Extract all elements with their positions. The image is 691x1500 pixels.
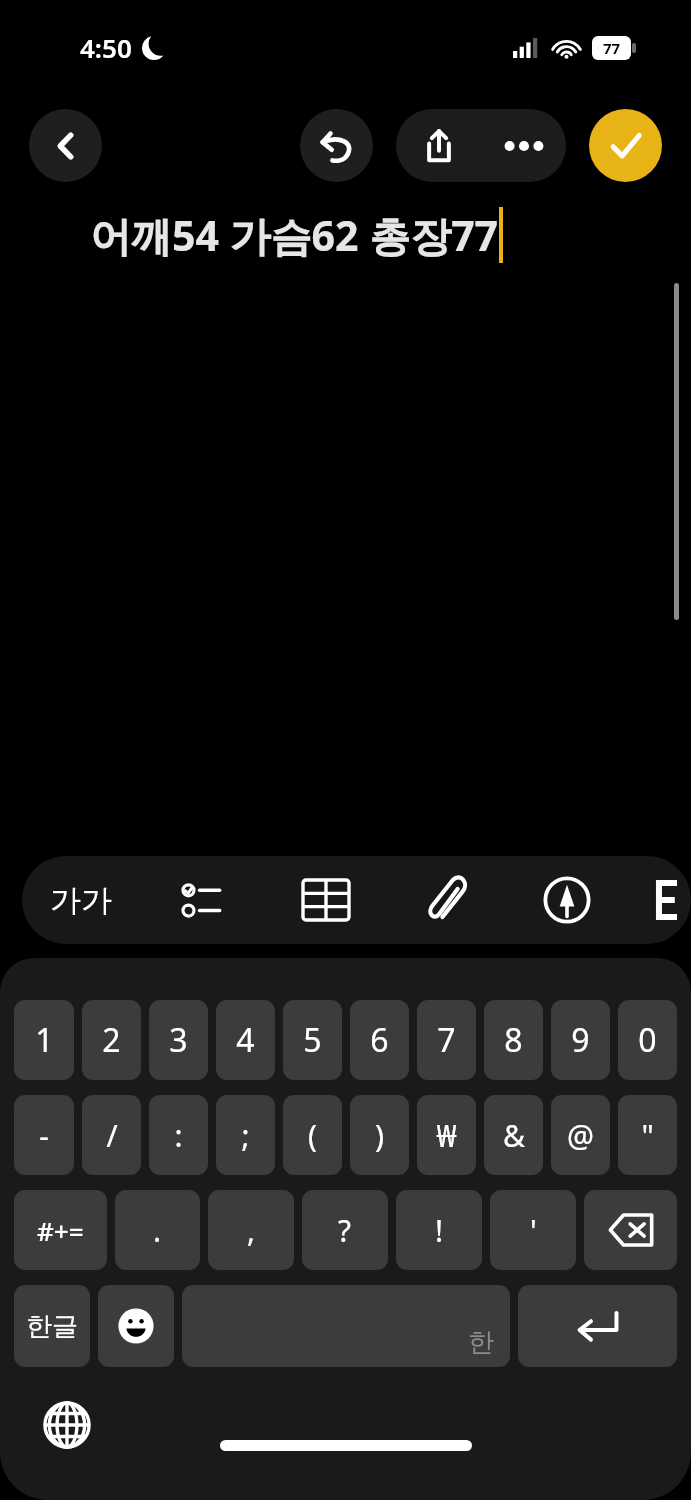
button[interactable]: ; — [216, 1095, 275, 1175]
button[interactable]: ! — [396, 1190, 482, 1270]
staticText: ₩ — [436, 1115, 457, 1156]
button[interactable]: Done — [589, 109, 662, 182]
staticText: ? — [338, 1210, 352, 1251]
staticText: 6 — [370, 1018, 389, 1062]
staticText: 7 — [437, 1018, 456, 1062]
button[interactable]: 4 — [216, 1000, 275, 1080]
button[interactable]: 3 — [149, 1000, 208, 1080]
staticText: #+= — [37, 1213, 84, 1248]
staticText: & — [503, 1115, 525, 1156]
button[interactable]: More options — [481, 109, 566, 182]
button[interactable]: Change keyboard — [42, 1400, 92, 1450]
button[interactable]: & — [484, 1095, 543, 1175]
staticText: 77 — [603, 38, 621, 58]
staticText: - — [39, 1115, 49, 1156]
staticText: : — [174, 1115, 183, 1156]
staticText: 한글 — [26, 1310, 78, 1343]
button[interactable]: - — [14, 1095, 74, 1175]
button[interactable]: ) — [350, 1095, 409, 1175]
staticText: 3 — [169, 1018, 188, 1062]
button[interactable]: Attach file — [387, 856, 507, 944]
button[interactable]: 한 — [182, 1285, 510, 1367]
staticText: @ — [567, 1115, 594, 1156]
button[interactable]: 5 — [283, 1000, 342, 1080]
button[interactable]: More tools — [627, 856, 691, 944]
button[interactable]: ( — [283, 1095, 342, 1175]
button[interactable]: 한글 — [14, 1285, 90, 1367]
staticText: 1 — [35, 1018, 54, 1062]
staticText: 5 — [303, 1018, 322, 1062]
button[interactable]: Markup — [507, 856, 627, 944]
staticText: 8 — [504, 1018, 523, 1062]
button[interactable]: / — [82, 1095, 141, 1175]
button[interactable]: Share — [396, 109, 481, 182]
button[interactable]: ' — [490, 1190, 576, 1270]
button[interactable]: 0 — [618, 1000, 677, 1080]
button[interactable]: 9 — [551, 1000, 610, 1080]
button[interactable]: @ — [551, 1095, 610, 1175]
button[interactable]: Emoji — [98, 1285, 174, 1367]
staticText: " — [641, 1115, 654, 1156]
staticText: 9 — [571, 1018, 590, 1062]
staticText: 0 — [638, 1018, 657, 1062]
button[interactable]: Back — [29, 109, 102, 182]
button[interactable]: 8 — [484, 1000, 543, 1080]
staticText: 4:50 — [80, 30, 132, 65]
button[interactable]: 7 — [417, 1000, 476, 1080]
button[interactable]: Undo — [300, 109, 373, 182]
staticText: ; — [241, 1115, 250, 1156]
button[interactable]: 6 — [350, 1000, 409, 1080]
button[interactable]: : — [149, 1095, 208, 1175]
button[interactable]: 2 — [82, 1000, 141, 1080]
staticText: 가가 — [50, 881, 112, 920]
button[interactable]: Backspace — [584, 1190, 677, 1270]
button[interactable]: Return — [518, 1285, 677, 1367]
button[interactable]: " — [618, 1095, 677, 1175]
staticText: 2 — [102, 1018, 121, 1062]
button[interactable]: 가가 — [22, 856, 140, 944]
staticText: ! — [435, 1210, 444, 1251]
button[interactable]: Table — [265, 856, 387, 944]
button[interactable]: ₩ — [417, 1095, 476, 1175]
button[interactable]: ? — [302, 1190, 388, 1270]
staticText: / — [106, 1115, 118, 1156]
button[interactable]: , — [208, 1190, 294, 1270]
staticText: 4 — [236, 1018, 255, 1062]
staticText: ' — [530, 1210, 537, 1251]
staticText: 한 — [468, 1326, 494, 1359]
staticText: ) — [375, 1115, 384, 1156]
staticText: 어깨54 가슴62 총장77 — [90, 207, 499, 263]
staticText: , — [247, 1210, 256, 1251]
staticText: . — [153, 1210, 162, 1251]
staticText: ( — [308, 1115, 317, 1156]
button[interactable]: Checklist — [140, 856, 265, 944]
button[interactable]: . — [115, 1190, 200, 1270]
button[interactable]: #+= — [14, 1190, 107, 1270]
button[interactable]: 1 — [14, 1000, 74, 1080]
